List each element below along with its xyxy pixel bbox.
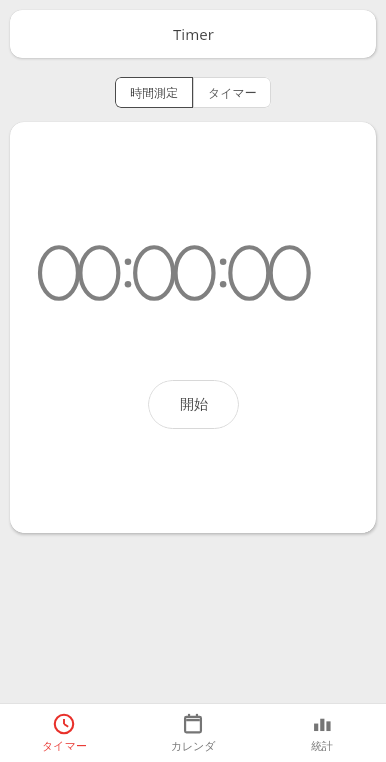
button[interactable]: Timer (10, 10, 376, 58)
button[interactable]: 開始 (148, 380, 239, 429)
button[interactable]: カレンダ (128, 703, 257, 762)
button[interactable]: タイマー (0, 703, 128, 762)
staticText: タイマー (42, 739, 87, 753)
button[interactable]: タイマー (193, 77, 271, 108)
staticText: 時間測定 (130, 85, 178, 100)
button[interactable]: 時間測定 (115, 77, 193, 108)
staticText: タイマー (208, 85, 257, 100)
staticText: 開始 (180, 396, 208, 414)
staticText: カレンダ (170, 739, 216, 753)
staticText: 統計 (311, 739, 333, 753)
staticText: Timer (173, 24, 214, 44)
button[interactable]: 統計 (257, 703, 386, 762)
